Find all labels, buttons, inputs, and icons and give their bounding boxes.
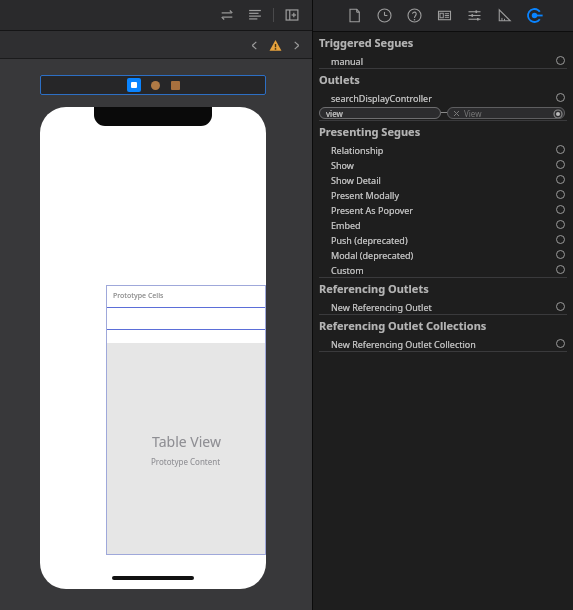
button[interactable]: Identity inspector [429,0,459,31]
button[interactable]: manual [313,53,573,68]
staticText: Push (deprecated) [331,234,408,246]
staticText: Present Modally [331,189,400,201]
button[interactable]: Next issue [286,35,306,55]
staticText: Embed [331,219,361,231]
staticText: New Referencing Outlet [331,301,432,313]
button[interactable]: Custom [313,262,573,277]
staticText: searchDisplayController [331,92,432,104]
staticText: Present As Popover [331,204,414,216]
staticText: Table View [152,432,221,451]
button[interactable]: Present As Popover [313,202,573,217]
button[interactable]: Quick help [399,0,429,31]
staticText: Triggered Segues [319,35,414,50]
button[interactable]: Connections inspector [519,0,549,31]
staticText: View [464,108,482,119]
button[interactable]: Warning [264,34,286,56]
button[interactable]: Relationship [313,142,573,157]
staticText: Modal (deprecated) [331,249,414,261]
button[interactable]: First Responder [151,81,160,90]
staticText: Custom [331,264,364,276]
staticText: New Referencing Outlet Collection [331,338,476,350]
staticText: Prototype Cells [113,291,164,301]
button[interactable]: History inspector [369,0,399,31]
button[interactable]: Swap [215,3,239,27]
staticText: Referencing Outlets [319,281,429,296]
button[interactable]: New Referencing Outlet Collection [313,336,573,351]
button[interactable]: Exit [171,81,180,90]
staticText: Show [331,159,354,171]
button[interactable]: Modal (deprecated) [313,247,573,262]
button[interactable]: Present Modally [313,187,573,202]
button[interactable] [106,307,266,330]
button[interactable]: Add panel [280,3,304,27]
staticText: Relationship [331,144,384,156]
staticText: view [326,108,343,119]
staticText: Show Detail [331,174,381,186]
button[interactable]: Align [243,3,267,27]
staticText: Presenting Segues [319,124,421,139]
button[interactable]: Attributes inspector [459,0,489,31]
button[interactable]: Push (deprecated) [313,232,573,247]
staticText: Outlets [319,72,360,87]
button[interactable]: Show Detail [313,172,573,187]
button[interactable]: File inspector [339,0,369,31]
button[interactable]: Show [313,157,573,172]
button[interactable]: Size inspector [489,0,519,31]
button[interactable]: view [313,105,573,120]
button[interactable]: New Referencing Outlet [313,299,573,314]
staticText: Prototype Content [151,456,221,467]
button[interactable]: View Controller [127,78,141,92]
staticText: manual [331,55,363,67]
button[interactable]: Embed [313,217,573,232]
button[interactable]: Previous issue [244,35,264,55]
staticText: Referencing Outlet Collections [319,318,487,333]
button[interactable]: searchDisplayController [313,90,573,105]
